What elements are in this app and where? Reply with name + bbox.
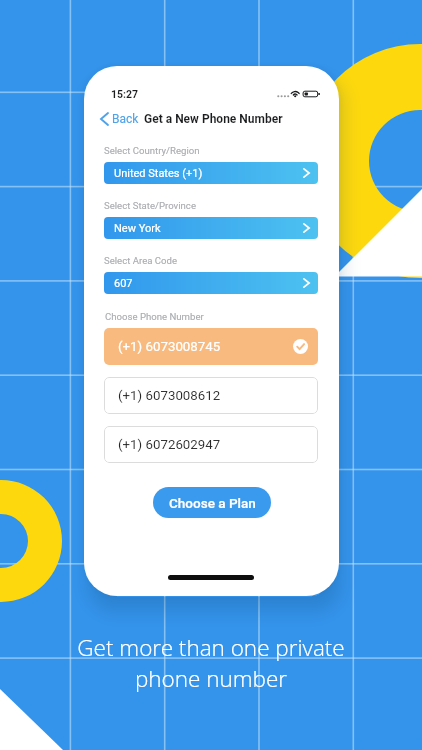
staticText: Get a New Phone Number <box>144 112 283 126</box>
staticText: Choose a Plan <box>169 495 256 511</box>
staticText: United States (+1) <box>114 167 203 180</box>
other: Open Select Country/Region <box>303 168 310 178</box>
staticText: New York <box>114 222 161 235</box>
staticText: Select Country/Region <box>104 145 200 156</box>
button[interactable]: Choose a Plan <box>153 487 271 518</box>
staticText: Select State/Province <box>104 200 196 211</box>
button[interactable]: 607 <box>104 272 318 294</box>
other: Open Select Area Code <box>303 278 310 288</box>
button[interactable]: Back <box>98 109 141 129</box>
staticText: Choose Phone Number <box>105 311 204 322</box>
staticText: 15:27 <box>111 88 139 100</box>
staticText: (+1) 6073008745 <box>118 339 221 355</box>
button[interactable]: (+1) 6073008745 <box>104 328 318 365</box>
staticText: 607 <box>114 277 133 290</box>
staticText: Back <box>112 112 139 126</box>
staticText: (+1) 6072602947 <box>118 437 221 453</box>
button[interactable]: (+1) 6072602947 <box>104 426 318 463</box>
staticText: (+1) 6073008612 <box>118 388 221 404</box>
staticText: Get more than one private phone number <box>77 632 345 694</box>
other: Open Select State/Province <box>303 223 310 233</box>
staticText: Select Area Code <box>104 255 178 266</box>
button[interactable]: (+1) 6073008612 <box>104 377 318 414</box>
button[interactable]: New York <box>104 217 318 239</box>
button[interactable]: United States (+1) <box>104 162 318 184</box>
